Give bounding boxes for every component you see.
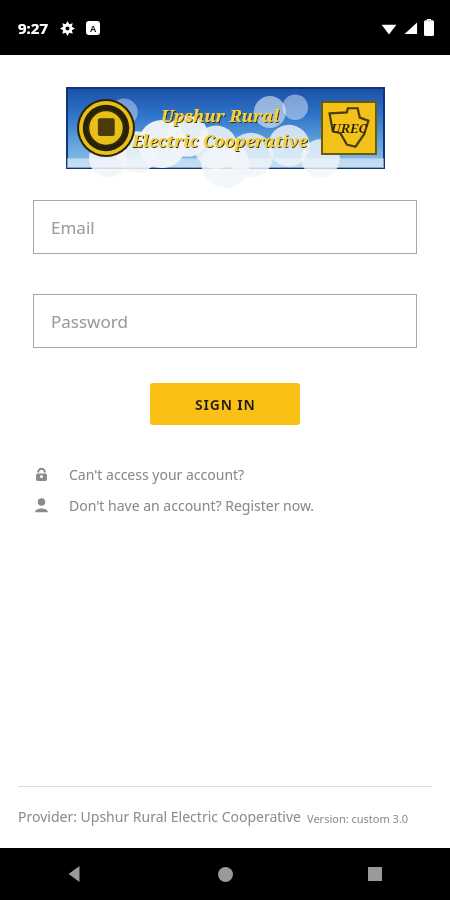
button[interactable]: Recent apps: [300, 848, 450, 900]
staticText: Upshur Rural: [161, 104, 280, 127]
staticText: Upshur Rural: [162, 105, 281, 128]
staticText: Version: custom 3.0: [307, 811, 409, 826]
staticText: Don't have an account? Register now.: [69, 496, 315, 515]
staticText: UREC: [331, 119, 367, 137]
button[interactable]: Home: [150, 848, 300, 900]
staticText: Can't access your account?: [69, 465, 245, 484]
staticText: A: [90, 22, 97, 34]
staticText: Provider: Upshur Rural Electric Cooperat…: [18, 807, 301, 826]
button[interactable]: SIGN IN: [150, 383, 300, 425]
button[interactable]: Back: [0, 848, 150, 900]
staticText: Password: [51, 310, 128, 333]
staticText: 9:27: [18, 18, 48, 38]
staticText: Electric Cooperative: [133, 130, 309, 153]
staticText: SIGN IN: [195, 395, 256, 414]
staticText: Electric Cooperative: [132, 129, 308, 152]
button[interactable]: Can't access your account?: [0, 463, 450, 487]
button[interactable]: Don't have an account? Register now.: [0, 494, 450, 518]
staticText: Email: [51, 216, 95, 239]
button[interactable]: Email: [33, 200, 417, 254]
button[interactable]: Password: [33, 294, 417, 348]
